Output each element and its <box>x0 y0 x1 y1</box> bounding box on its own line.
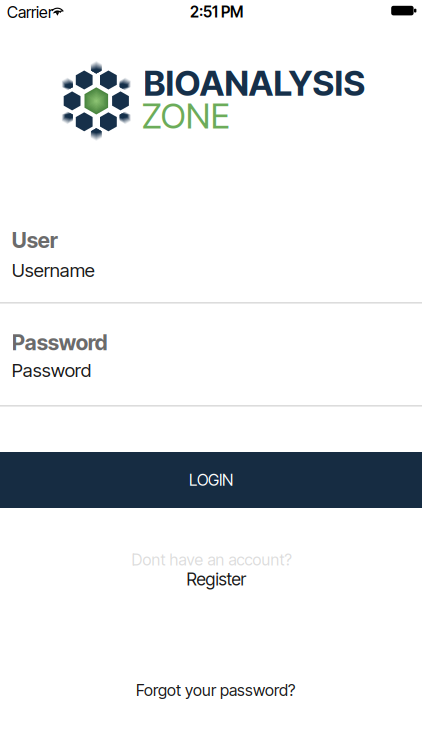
button[interactable]: Register <box>187 569 247 590</box>
staticText: LOGIN <box>189 470 233 490</box>
staticText: Password <box>12 359 91 381</box>
button[interactable]: Forgot your password? <box>136 680 295 700</box>
button[interactable]: LOGIN <box>0 452 422 508</box>
staticText: User <box>12 227 58 253</box>
staticText: Carrier <box>7 3 53 22</box>
staticText: Username <box>12 259 95 281</box>
staticText: Dont have an account? <box>131 550 291 569</box>
staticText: BIOANALYSIS <box>144 62 366 104</box>
staticText: ZONE <box>142 95 230 137</box>
staticText: Password <box>12 330 108 355</box>
staticText: 2:51 PM <box>190 3 243 21</box>
staticText: Register <box>187 569 247 590</box>
staticText: Forgot your password? <box>136 680 295 700</box>
